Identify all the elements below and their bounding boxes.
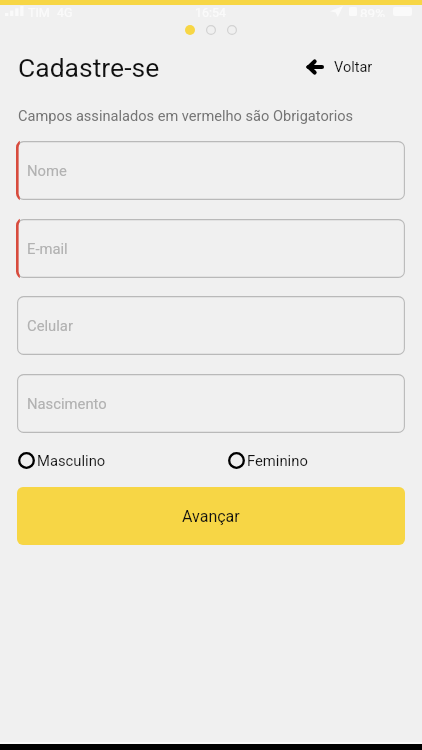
other: Voltar (306, 58, 324, 76)
staticText: Celular (27, 317, 73, 334)
button[interactable]: Celular (17, 296, 405, 355)
staticText: 16:54 (195, 5, 227, 17)
button[interactable]: Voltar (306, 58, 373, 76)
button[interactable]: Nome (17, 141, 405, 200)
button[interactable]: Feminino (228, 452, 308, 469)
staticText: 4G (57, 5, 73, 17)
staticText: Masculino (37, 452, 106, 469)
staticText: Feminino (247, 452, 308, 469)
staticText: TIM (28, 5, 50, 17)
staticText: E-mail (27, 240, 68, 257)
staticText: 89% (360, 5, 386, 17)
staticText: Nascimento (27, 395, 107, 412)
button[interactable]: Nascimento (17, 374, 405, 433)
button[interactable]: Avançar (17, 487, 405, 545)
staticText: Avançar (182, 507, 240, 526)
staticText: Cadastre-se (18, 52, 160, 83)
staticText: Campos assinalados em vermelho são Obrig… (18, 107, 354, 124)
button[interactable]: E-mail (17, 219, 405, 278)
staticText: Voltar (334, 59, 373, 76)
staticText: Nome (27, 162, 67, 179)
button[interactable]: Masculino (18, 452, 106, 469)
